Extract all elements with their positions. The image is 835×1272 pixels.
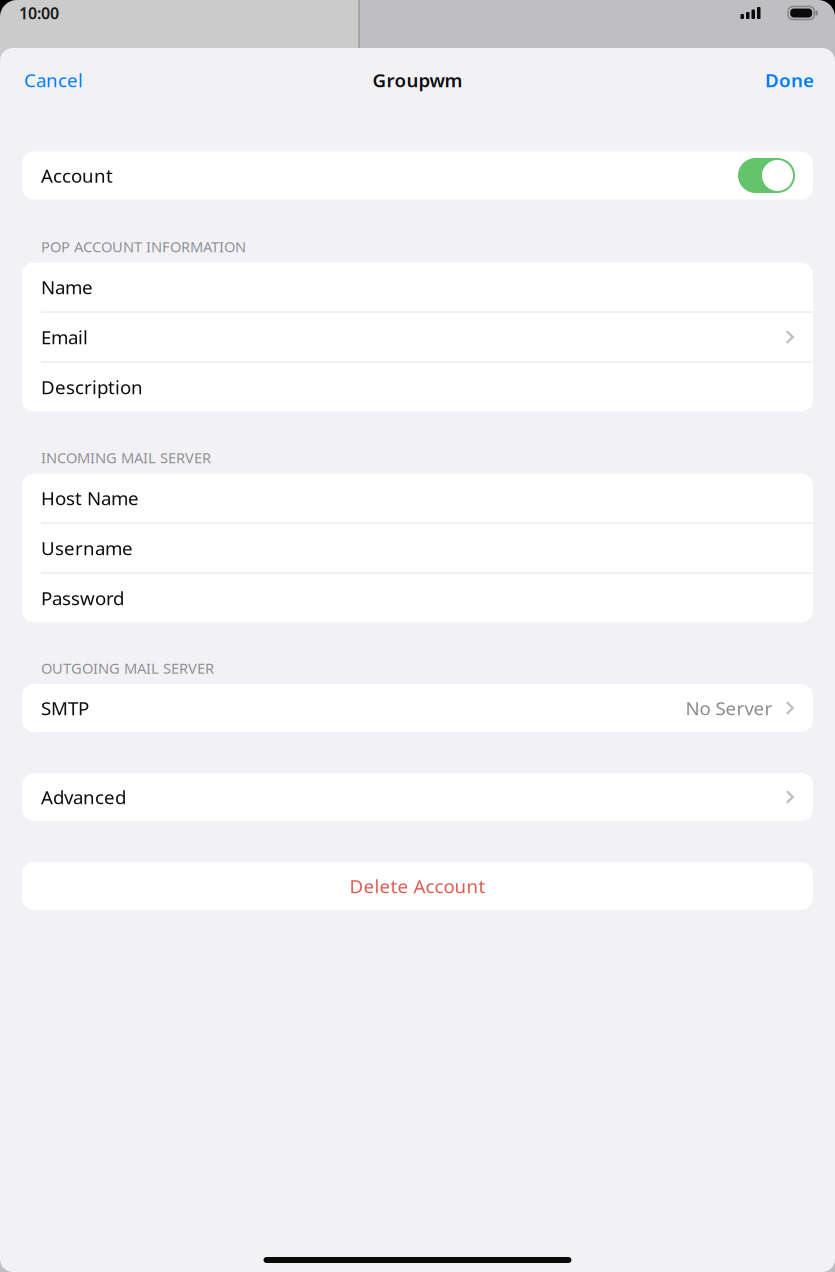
staticText: OUTGOING MAIL SERVER bbox=[41, 658, 214, 678]
button[interactable]: Description bbox=[22, 362, 813, 411]
staticText: POP ACCOUNT INFORMATION bbox=[41, 237, 246, 256]
button[interactable]: Delete Account bbox=[22, 862, 813, 910]
staticText: Username bbox=[41, 536, 133, 560]
staticText: Email bbox=[41, 325, 88, 349]
button[interactable]: Username bbox=[22, 523, 813, 572]
staticText: Name bbox=[41, 275, 93, 299]
button[interactable]: SMTP bbox=[22, 684, 813, 732]
staticText: Delete Account bbox=[349, 874, 485, 898]
staticText: Cancel bbox=[24, 68, 83, 92]
staticText: Advanced bbox=[41, 785, 126, 809]
button[interactable]: Email bbox=[22, 312, 813, 361]
button[interactable]: Advanced bbox=[22, 773, 813, 821]
staticText: Done bbox=[765, 68, 814, 92]
staticText: SMTP bbox=[41, 696, 89, 720]
staticText: 10:00 bbox=[19, 2, 59, 24]
button[interactable]: Name bbox=[22, 262, 813, 311]
staticText: Description bbox=[41, 375, 143, 399]
button[interactable]: Done bbox=[749, 48, 835, 112]
staticText: Password bbox=[41, 586, 124, 610]
button[interactable]: Host Name bbox=[22, 473, 813, 522]
staticText: Host Name bbox=[41, 486, 139, 510]
staticText: INCOMING MAIL SERVER bbox=[41, 448, 211, 467]
staticText: No Server bbox=[686, 696, 773, 720]
button[interactable]: Cancel bbox=[0, 48, 99, 112]
staticText: Account bbox=[41, 163, 113, 188]
staticText: Groupwm bbox=[372, 68, 462, 92]
button[interactable]: Password bbox=[22, 573, 813, 622]
